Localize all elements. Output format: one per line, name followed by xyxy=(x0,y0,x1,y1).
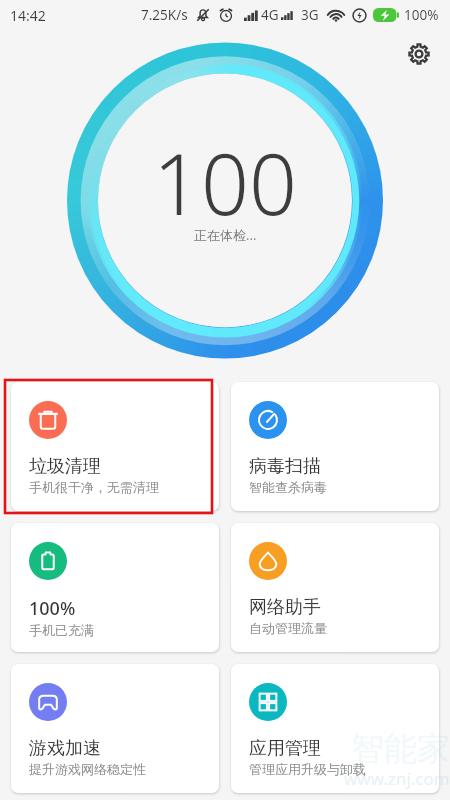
staticText: 自动管理流量 xyxy=(249,620,327,636)
staticText: 4G xyxy=(261,6,279,24)
staticText: 正在体检... xyxy=(194,226,257,244)
staticText: 100% xyxy=(29,596,76,621)
staticText: 100% xyxy=(404,6,439,24)
button[interactable]: 100% xyxy=(11,523,219,652)
staticText: 智能家 xyxy=(351,728,450,770)
button[interactable]: 应用管理 xyxy=(231,664,439,793)
staticText: 网络助手 xyxy=(249,596,321,619)
staticText: 应用管理 xyxy=(249,737,321,760)
button[interactable]: 游戏加速 xyxy=(11,664,219,793)
button[interactable]: 垃圾清理 xyxy=(11,382,219,511)
staticText: 游戏加速 xyxy=(29,737,101,760)
staticText: 手机很干净，无需清理 xyxy=(29,479,159,495)
button[interactable]: Settings xyxy=(399,34,439,74)
staticText: 管理应用升级与卸载 xyxy=(249,761,366,777)
staticText: 7.25K/s xyxy=(141,6,188,24)
staticText: 垃圾清理 xyxy=(29,455,101,478)
staticText: www.znj.com xyxy=(344,767,450,790)
button[interactable]: 网络助手 xyxy=(231,523,439,652)
button[interactable]: 病毒扫描 xyxy=(231,382,439,511)
staticText: 100 xyxy=(153,125,297,239)
staticText: 提升游戏网络稳定性 xyxy=(29,761,146,777)
staticText: 3G xyxy=(301,6,319,24)
staticText: 手机已充满 xyxy=(29,622,94,638)
staticText: 病毒扫描 xyxy=(249,455,321,478)
staticText: 智能查杀病毒 xyxy=(249,479,327,495)
staticText: 14:42 xyxy=(10,6,46,25)
